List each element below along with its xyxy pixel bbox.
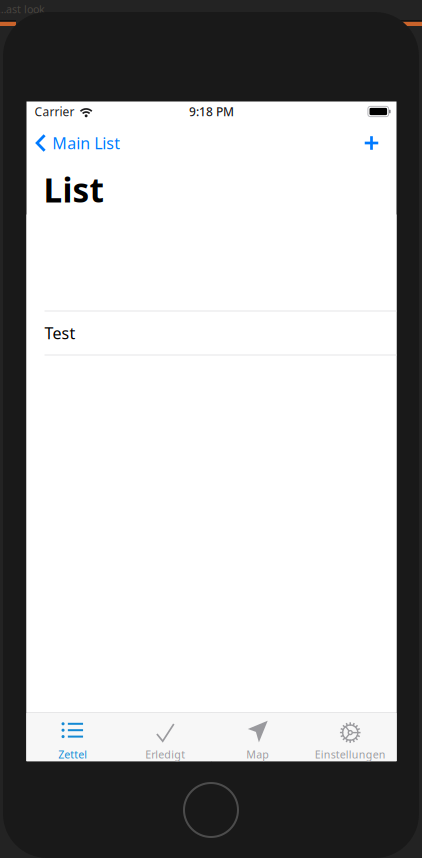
button[interactable]: Add item	[349, 121, 393, 164]
staticText: Main List	[52, 132, 120, 154]
button[interactable]: Test	[26, 311, 396, 354]
button[interactable]: Main List	[26, 121, 130, 164]
button[interactable]: Map	[211, 713, 304, 761]
staticText: Test	[44, 322, 75, 344]
staticText: …ast look	[0, 2, 45, 16]
staticText: Einstellungen	[315, 747, 386, 762]
staticText: Zettel	[58, 747, 87, 762]
staticText: Erledigt	[145, 747, 185, 762]
staticText: List	[43, 167, 103, 212]
staticText: Map	[246, 747, 269, 762]
staticText: 9:18 PM	[189, 103, 234, 119]
button[interactable]: Erledigt	[119, 713, 211, 761]
button[interactable]: Einstellungen	[304, 713, 396, 761]
staticText: Carrier	[34, 103, 74, 119]
button[interactable]: Zettel	[26, 713, 119, 761]
